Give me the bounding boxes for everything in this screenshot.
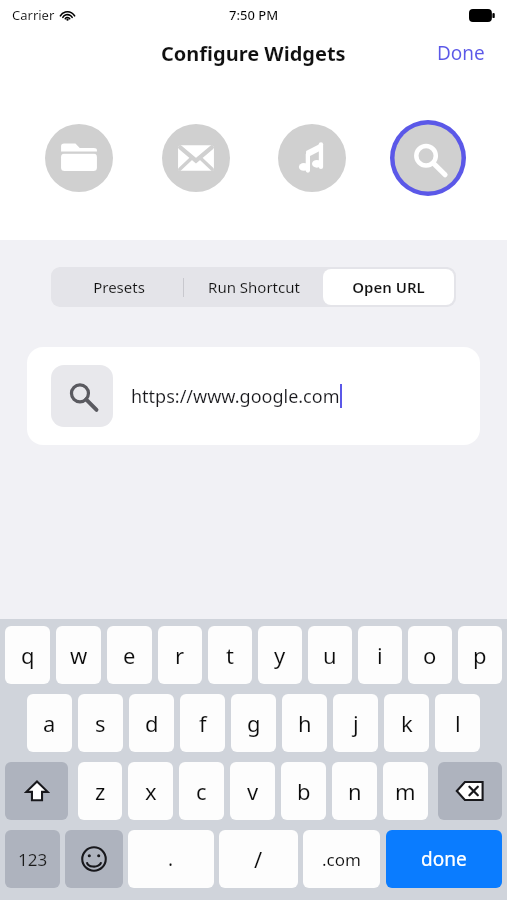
- staticText: b: [297, 776, 311, 806]
- staticText: p: [473, 640, 487, 670]
- staticText: h: [298, 708, 312, 738]
- staticText: w: [70, 640, 88, 670]
- button[interactable]: s: [78, 694, 123, 752]
- staticText: Open URL: [352, 277, 425, 297]
- button[interactable]: Presets: [53, 269, 184, 305]
- staticText: Presets: [93, 277, 145, 297]
- button[interactable]: Open URL: [323, 269, 454, 305]
- button[interactable]: d: [129, 694, 174, 752]
- button[interactable]: k: [384, 694, 429, 752]
- button[interactable]: w: [56, 626, 101, 684]
- button[interactable]: Backspace: [438, 762, 502, 820]
- button[interactable]: 123: [5, 830, 60, 888]
- staticText: c: [196, 776, 207, 806]
- button[interactable]: done: [386, 830, 502, 888]
- button[interactable]: b: [281, 762, 326, 820]
- button[interactable]: Emoji: [65, 830, 123, 888]
- button[interactable]: h: [282, 694, 327, 752]
- staticText: /: [254, 844, 263, 874]
- button[interactable]: l: [435, 694, 480, 752]
- button[interactable]: t: [208, 626, 252, 684]
- staticText: m: [395, 776, 416, 806]
- staticText: y: [274, 640, 286, 670]
- button[interactable]: e: [107, 626, 152, 684]
- staticText: g: [247, 708, 261, 738]
- staticText: Carrier: [12, 6, 55, 24]
- staticText: Configure Widgets: [161, 40, 346, 67]
- button[interactable]: Search: [27, 347, 480, 445]
- button[interactable]: q: [5, 626, 50, 684]
- staticText: x: [145, 776, 157, 806]
- button[interactable]: Done: [433, 34, 489, 72]
- staticText: t: [226, 640, 234, 670]
- other: Search: [51, 365, 113, 427]
- button[interactable]: j: [333, 694, 378, 752]
- button[interactable]: z: [78, 762, 122, 820]
- button[interactable]: Music widget: [273, 119, 351, 197]
- button[interactable]: Run Shortcut: [188, 269, 319, 305]
- staticText: e: [123, 640, 136, 670]
- button[interactable]: Search widget: [389, 119, 467, 197]
- staticText: z: [95, 776, 106, 806]
- button[interactable]: x: [128, 762, 173, 820]
- staticText: k: [401, 708, 413, 738]
- button[interactable]: .: [128, 830, 214, 888]
- staticText: .com: [322, 848, 361, 871]
- staticText: .: [168, 846, 174, 872]
- staticText: done: [421, 846, 467, 872]
- staticText: Done: [437, 40, 485, 66]
- staticText: v: [247, 776, 259, 806]
- button[interactable]: v: [230, 762, 275, 820]
- staticText: https://www.google.com: [131, 384, 340, 409]
- button[interactable]: Mail widget: [157, 119, 235, 197]
- button[interactable]: i: [358, 626, 402, 684]
- button[interactable]: f: [180, 694, 225, 752]
- button[interactable]: g: [231, 694, 276, 752]
- button[interactable]: o: [408, 626, 452, 684]
- button[interactable]: n: [332, 762, 377, 820]
- button[interactable]: m: [383, 762, 428, 820]
- button[interactable]: Folder widget: [40, 119, 118, 197]
- button[interactable]: u: [308, 626, 352, 684]
- staticText: d: [145, 708, 159, 738]
- button[interactable]: /: [219, 830, 298, 888]
- button[interactable]: a: [27, 694, 72, 752]
- staticText: q: [21, 640, 35, 670]
- staticText: o: [423, 640, 437, 670]
- staticText: l: [455, 708, 461, 738]
- staticText: 123: [18, 848, 48, 871]
- staticText: 7:50 PM: [229, 6, 279, 24]
- button[interactable]: r: [158, 626, 202, 684]
- staticText: s: [95, 708, 106, 738]
- button[interactable]: .com: [303, 830, 380, 888]
- button[interactable]: c: [179, 762, 224, 820]
- staticText: i: [377, 640, 383, 670]
- staticText: j: [353, 708, 359, 738]
- button[interactable]: p: [458, 626, 502, 684]
- staticText: f: [199, 708, 207, 738]
- staticText: r: [175, 640, 185, 670]
- staticText: a: [43, 708, 56, 738]
- staticText: u: [323, 640, 337, 670]
- button[interactable]: Shift: [5, 762, 68, 820]
- button[interactable]: y: [258, 626, 302, 684]
- staticText: Run Shortcut: [208, 277, 300, 297]
- staticText: n: [348, 776, 362, 806]
